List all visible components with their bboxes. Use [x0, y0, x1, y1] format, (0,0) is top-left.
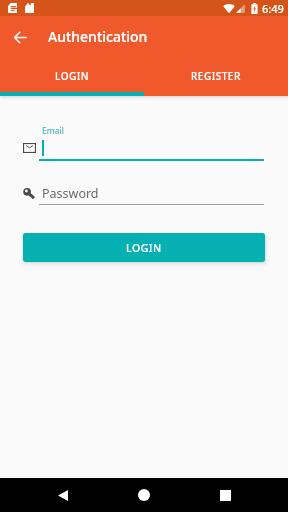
- button[interactable]: LOGIN: [0, 59, 144, 93]
- button[interactable]: REGISTER: [144, 59, 288, 93]
- staticText: Password: [42, 185, 99, 202]
- button[interactable]: LOGIN: [23, 233, 265, 262]
- staticText: LOGIN: [55, 69, 90, 83]
- staticText: Email: [42, 125, 64, 137]
- staticText: LOGIN: [126, 241, 162, 255]
- button[interactable]: Navigate up: [0, 17, 40, 57]
- staticText: 6:49: [262, 1, 284, 16]
- button[interactable]: Home: [124, 478, 164, 512]
- staticText: Authentication: [48, 27, 148, 46]
- staticText: REGISTER: [191, 69, 241, 83]
- button[interactable]: Recent apps: [205, 478, 245, 512]
- button[interactable]: Back: [43, 478, 83, 512]
